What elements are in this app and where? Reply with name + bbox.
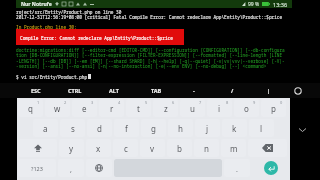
staticText: doctrine:migrations:diff [--editor-cmd […	[16, 47, 285, 53]
staticText: $ vi src/Entity/Product.php	[16, 74, 88, 80]
staticText: d	[97, 123, 102, 134]
button[interactable]: r	[99, 99, 124, 117]
button[interactable]: c	[113, 139, 138, 157]
staticText: w	[54, 103, 61, 114]
staticText: .	[236, 165, 238, 175]
staticText: q	[28, 103, 33, 114]
staticText: 8	[226, 100, 229, 105]
staticText: -version] [--ansi] [--no-ansi] [-n|--no-…	[16, 63, 267, 69]
staticText: 7	[199, 100, 202, 105]
staticText: r	[110, 103, 114, 114]
staticText: |	[267, 87, 271, 94]
button[interactable]: k	[222, 119, 247, 137]
staticText: z	[164, 103, 168, 114]
staticText: 9	[253, 100, 256, 105]
staticText: ESC	[31, 87, 41, 94]
button[interactable]	[248, 139, 287, 157]
staticText: 99 %	[248, 1, 260, 8]
button[interactable]: /	[214, 83, 250, 98]
staticText: 0	[280, 100, 283, 105]
button[interactable]: ALT	[96, 83, 132, 98]
staticText: b	[177, 143, 182, 154]
button[interactable]: x	[86, 139, 111, 157]
staticText: 4	[118, 100, 121, 105]
button[interactable]: g	[141, 119, 166, 137]
button[interactable]: ,	[58, 159, 84, 177]
button[interactable]: -	[176, 83, 212, 98]
button[interactable]: z	[153, 99, 178, 117]
button[interactable]: n	[194, 139, 219, 157]
button[interactable]: f	[114, 119, 139, 137]
button[interactable]: TAB	[138, 83, 174, 98]
staticText: ALT	[109, 87, 119, 94]
staticText: x	[96, 143, 101, 154]
staticText: ,	[70, 165, 72, 175]
button[interactable]: e	[72, 99, 97, 117]
staticText: v	[150, 143, 155, 154]
staticText: 13:36	[273, 1, 288, 8]
staticText: 2017-12-31T12:56:19+08:00 [critical] Fat…	[16, 14, 283, 20]
staticText: n	[204, 143, 209, 154]
button[interactable]: y	[59, 139, 84, 157]
button[interactable]: w	[45, 99, 70, 117]
staticText: m	[230, 143, 238, 154]
button[interactable]: a	[33, 119, 58, 137]
button[interactable]: s	[60, 119, 85, 137]
button[interactable]: p	[261, 99, 286, 117]
staticText: ?123	[31, 165, 43, 172]
staticText: 1	[37, 100, 40, 105]
button[interactable]	[86, 159, 112, 177]
button[interactable]: t	[126, 99, 151, 117]
staticText: 3	[91, 100, 94, 105]
staticText: t	[137, 103, 140, 114]
staticText: 2	[64, 100, 67, 105]
button[interactable]: Enter	[264, 161, 278, 175]
button[interactable]: b	[167, 139, 192, 157]
staticText: i	[218, 103, 221, 114]
button[interactable]: ?123	[18, 159, 56, 177]
staticText: /	[231, 87, 234, 94]
staticText: e	[82, 103, 87, 114]
staticText: TAB	[151, 87, 162, 94]
button[interactable]: v	[140, 139, 165, 157]
staticText: Nur Notrufe	[21, 1, 52, 8]
button[interactable]: d	[87, 119, 112, 137]
staticText: a	[43, 123, 48, 134]
staticText: p	[271, 103, 276, 114]
staticText: -	[193, 87, 195, 94]
button[interactable]: Keyboard settings	[284, 83, 312, 98]
staticText: s	[71, 123, 75, 134]
button[interactable]: q	[18, 99, 43, 117]
staticText: f	[125, 123, 128, 134]
staticText: k	[232, 123, 237, 134]
staticText: j	[206, 123, 209, 134]
staticText: c	[124, 143, 128, 154]
staticText: 6	[172, 100, 175, 105]
staticText: h	[178, 123, 183, 134]
button[interactable]: m	[221, 139, 246, 157]
staticText: 5	[145, 100, 148, 105]
staticText: CTRL	[68, 87, 82, 94]
staticText: o	[244, 103, 249, 114]
staticText: l	[260, 123, 263, 134]
button[interactable]: CTRL	[57, 83, 93, 98]
button[interactable]: Hide keyboard	[296, 124, 308, 136]
button[interactable]: |	[251, 83, 287, 98]
button[interactable]	[18, 139, 57, 157]
button[interactable]: h	[168, 119, 193, 137]
staticText: roject/src/Entity/Product.php on line 30	[16, 9, 122, 15]
button[interactable]: o	[234, 99, 259, 117]
staticText: g	[151, 123, 156, 134]
staticText: u	[190, 103, 195, 114]
staticText: -LENGTH]] [--db [DB]] [--em [EM]] [--sha…	[16, 58, 285, 64]
button[interactable]: l	[249, 119, 274, 137]
staticText: tion [DB-CONFIGURATION]] [--filter-expre…	[16, 52, 283, 58]
button[interactable]: u	[180, 99, 205, 117]
staticText: In Product.php line 30:	[16, 24, 77, 30]
button[interactable]: ESC	[18, 83, 54, 98]
staticText: y	[69, 143, 74, 154]
button[interactable]: j	[195, 119, 220, 137]
button[interactable]: i	[207, 99, 232, 117]
